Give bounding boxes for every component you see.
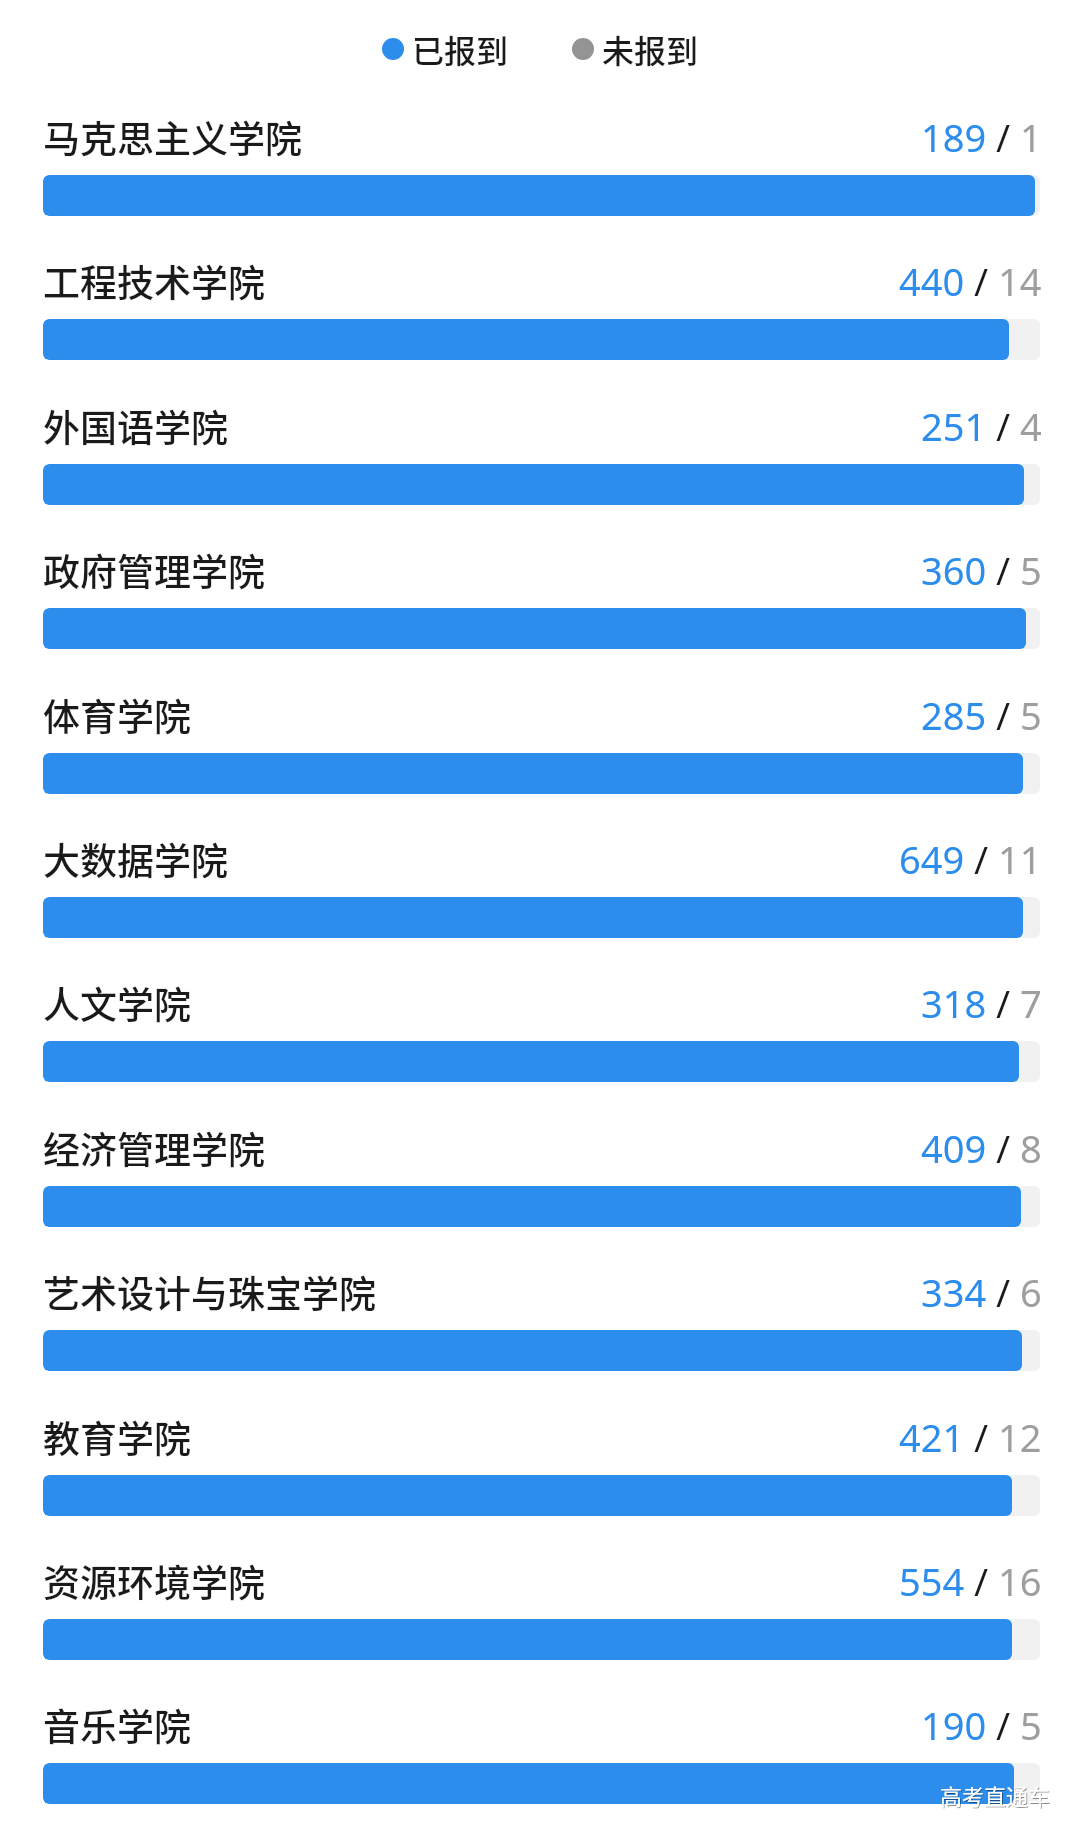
staticText: 外国语学院 [43,399,228,453]
button[interactable]: 资源环境学院 [0,1541,1080,1685]
staticText: 政府管理学院 [43,543,265,597]
staticText: 高考直通车 [940,1779,1051,1811]
button[interactable]: 政府管理学院 [0,530,1080,674]
staticText: 体育学院 [43,688,191,742]
staticText: 409 / 8 [921,1122,1042,1174]
staticText: 教育学院 [43,1410,191,1464]
button[interactable]: 音乐学院 [0,1685,1080,1829]
staticText: 421 / 12 [899,1411,1042,1463]
staticText: 318 / 7 [921,977,1042,1029]
staticText: 189 / 1 [921,111,1042,163]
staticText: 人文学院 [43,976,191,1030]
staticText: 未报到 [602,26,699,72]
staticText: 大数据学院 [43,832,228,886]
button[interactable]: 马克思主义学院 [0,97,1080,241]
staticText: 艺术设计与珠宝学院 [43,1265,376,1319]
staticText: 音乐学院 [43,1698,191,1752]
button[interactable]: 未报到 [572,26,699,72]
staticText: 190 / 5 [921,1699,1042,1751]
staticText: 649 / 11 [899,833,1042,885]
staticText: 251 / 4 [921,400,1042,452]
staticText: 资源环境学院 [43,1554,265,1608]
button[interactable]: 体育学院 [0,675,1080,819]
staticText: 554 / 16 [899,1555,1042,1607]
staticText: 已报到 [412,26,509,72]
button[interactable]: 教育学院 [0,1397,1080,1541]
staticText: 440 / 14 [899,255,1042,307]
button[interactable]: 人文学院 [0,963,1080,1107]
button[interactable]: 工程技术学院 [0,241,1080,385]
button[interactable]: 艺术设计与珠宝学院 [0,1252,1080,1396]
staticText: 经济管理学院 [43,1121,265,1175]
button[interactable]: 已报到 [382,26,509,72]
staticText: 马克思主义学院 [43,110,302,164]
button[interactable]: 经济管理学院 [0,1108,1080,1252]
staticText: 高考直通车 [941,1780,1052,1812]
button[interactable]: 大数据学院 [0,819,1080,963]
staticText: 285 / 5 [921,689,1042,741]
staticText: 334 / 6 [921,1266,1042,1318]
staticText: 工程技术学院 [43,254,265,308]
staticText: 360 / 5 [921,544,1042,596]
button[interactable]: 外国语学院 [0,386,1080,530]
